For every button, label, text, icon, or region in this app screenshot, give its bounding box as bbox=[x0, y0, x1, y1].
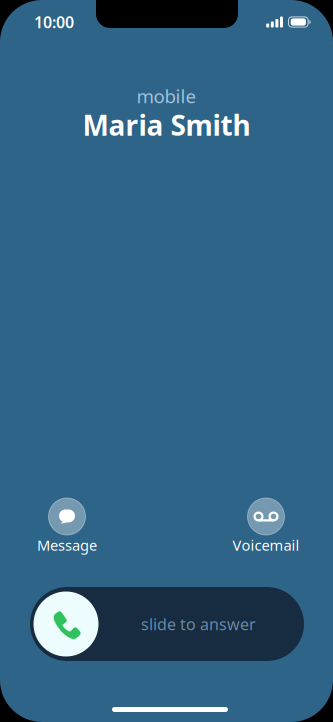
button[interactable]: Voicemail bbox=[216, 498, 316, 557]
staticText: mobile bbox=[136, 84, 196, 108]
staticText: Voicemail bbox=[232, 535, 299, 555]
staticText: slide to answer bbox=[141, 613, 256, 635]
staticText: Message bbox=[37, 535, 97, 555]
button[interactable]: slide to answer bbox=[30, 587, 304, 661]
button[interactable]: Message bbox=[17, 498, 117, 557]
staticText: Maria Smith bbox=[82, 106, 250, 144]
staticText: 10:00 bbox=[34, 11, 74, 33]
